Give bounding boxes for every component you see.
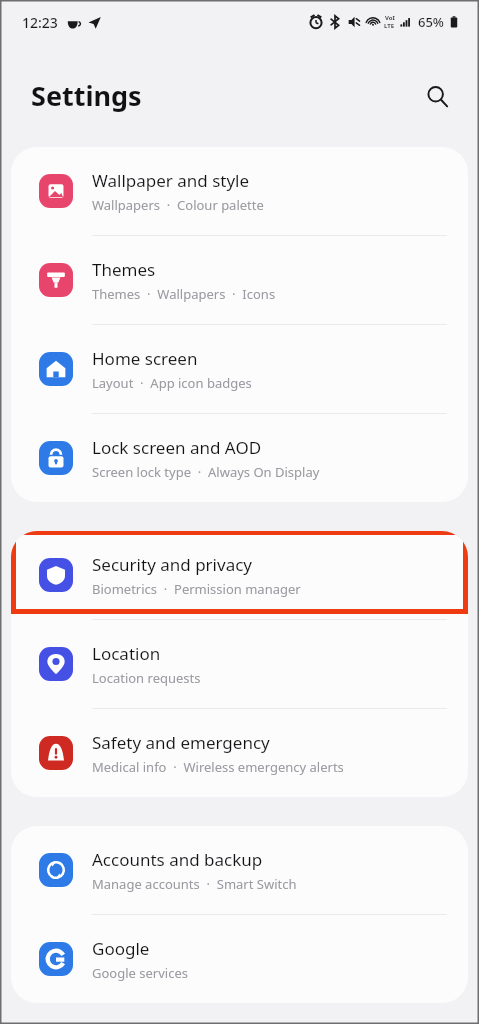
- button[interactable]: Security and privacy: [11, 531, 468, 620]
- staticText: Google: [92, 937, 150, 960]
- button[interactable]: Themes: [11, 236, 468, 325]
- staticText: Biometrics · Permission manager: [92, 580, 301, 598]
- staticText: Location: [92, 642, 161, 665]
- button[interactable]: Google: [11, 915, 468, 1003]
- staticText: Themes: [92, 258, 156, 281]
- staticText: 65%: [418, 13, 444, 31]
- staticText: Manage accounts · Smart Switch: [92, 875, 297, 893]
- staticText: Wallpaper and style: [92, 169, 250, 192]
- staticText: Safety and emergency: [92, 731, 270, 754]
- button[interactable]: Home screen: [11, 325, 468, 414]
- staticText: VoI: [385, 14, 395, 22]
- button[interactable]: Lock screen and AOD: [11, 414, 468, 502]
- staticText: Accounts and backup: [92, 848, 263, 871]
- staticText: Security and privacy: [92, 553, 253, 576]
- staticText: Home screen: [92, 347, 198, 370]
- staticText: Layout · App icon badges: [92, 374, 252, 392]
- staticText: Wallpapers · Colour palette: [92, 196, 264, 214]
- staticText: Themes · Wallpapers · Icons: [92, 285, 276, 303]
- button[interactable]: Search: [417, 76, 457, 116]
- staticText: 12:23: [22, 13, 58, 32]
- staticText: Location requests: [92, 669, 201, 687]
- button[interactable]: Safety and emergency: [11, 709, 468, 797]
- staticText: Medical info · Wireless emergency alerts: [92, 758, 344, 776]
- staticText: Screen lock type · Always On Display: [92, 463, 320, 481]
- button[interactable]: Accounts and backup: [11, 826, 468, 915]
- staticText: Google services: [92, 964, 188, 982]
- staticText: Settings: [31, 77, 142, 114]
- button[interactable]: Wallpaper and style: [11, 147, 468, 236]
- button[interactable]: Location: [11, 620, 468, 709]
- staticText: Lock screen and AOD: [92, 436, 262, 459]
- staticText: LTE: [384, 22, 395, 30]
